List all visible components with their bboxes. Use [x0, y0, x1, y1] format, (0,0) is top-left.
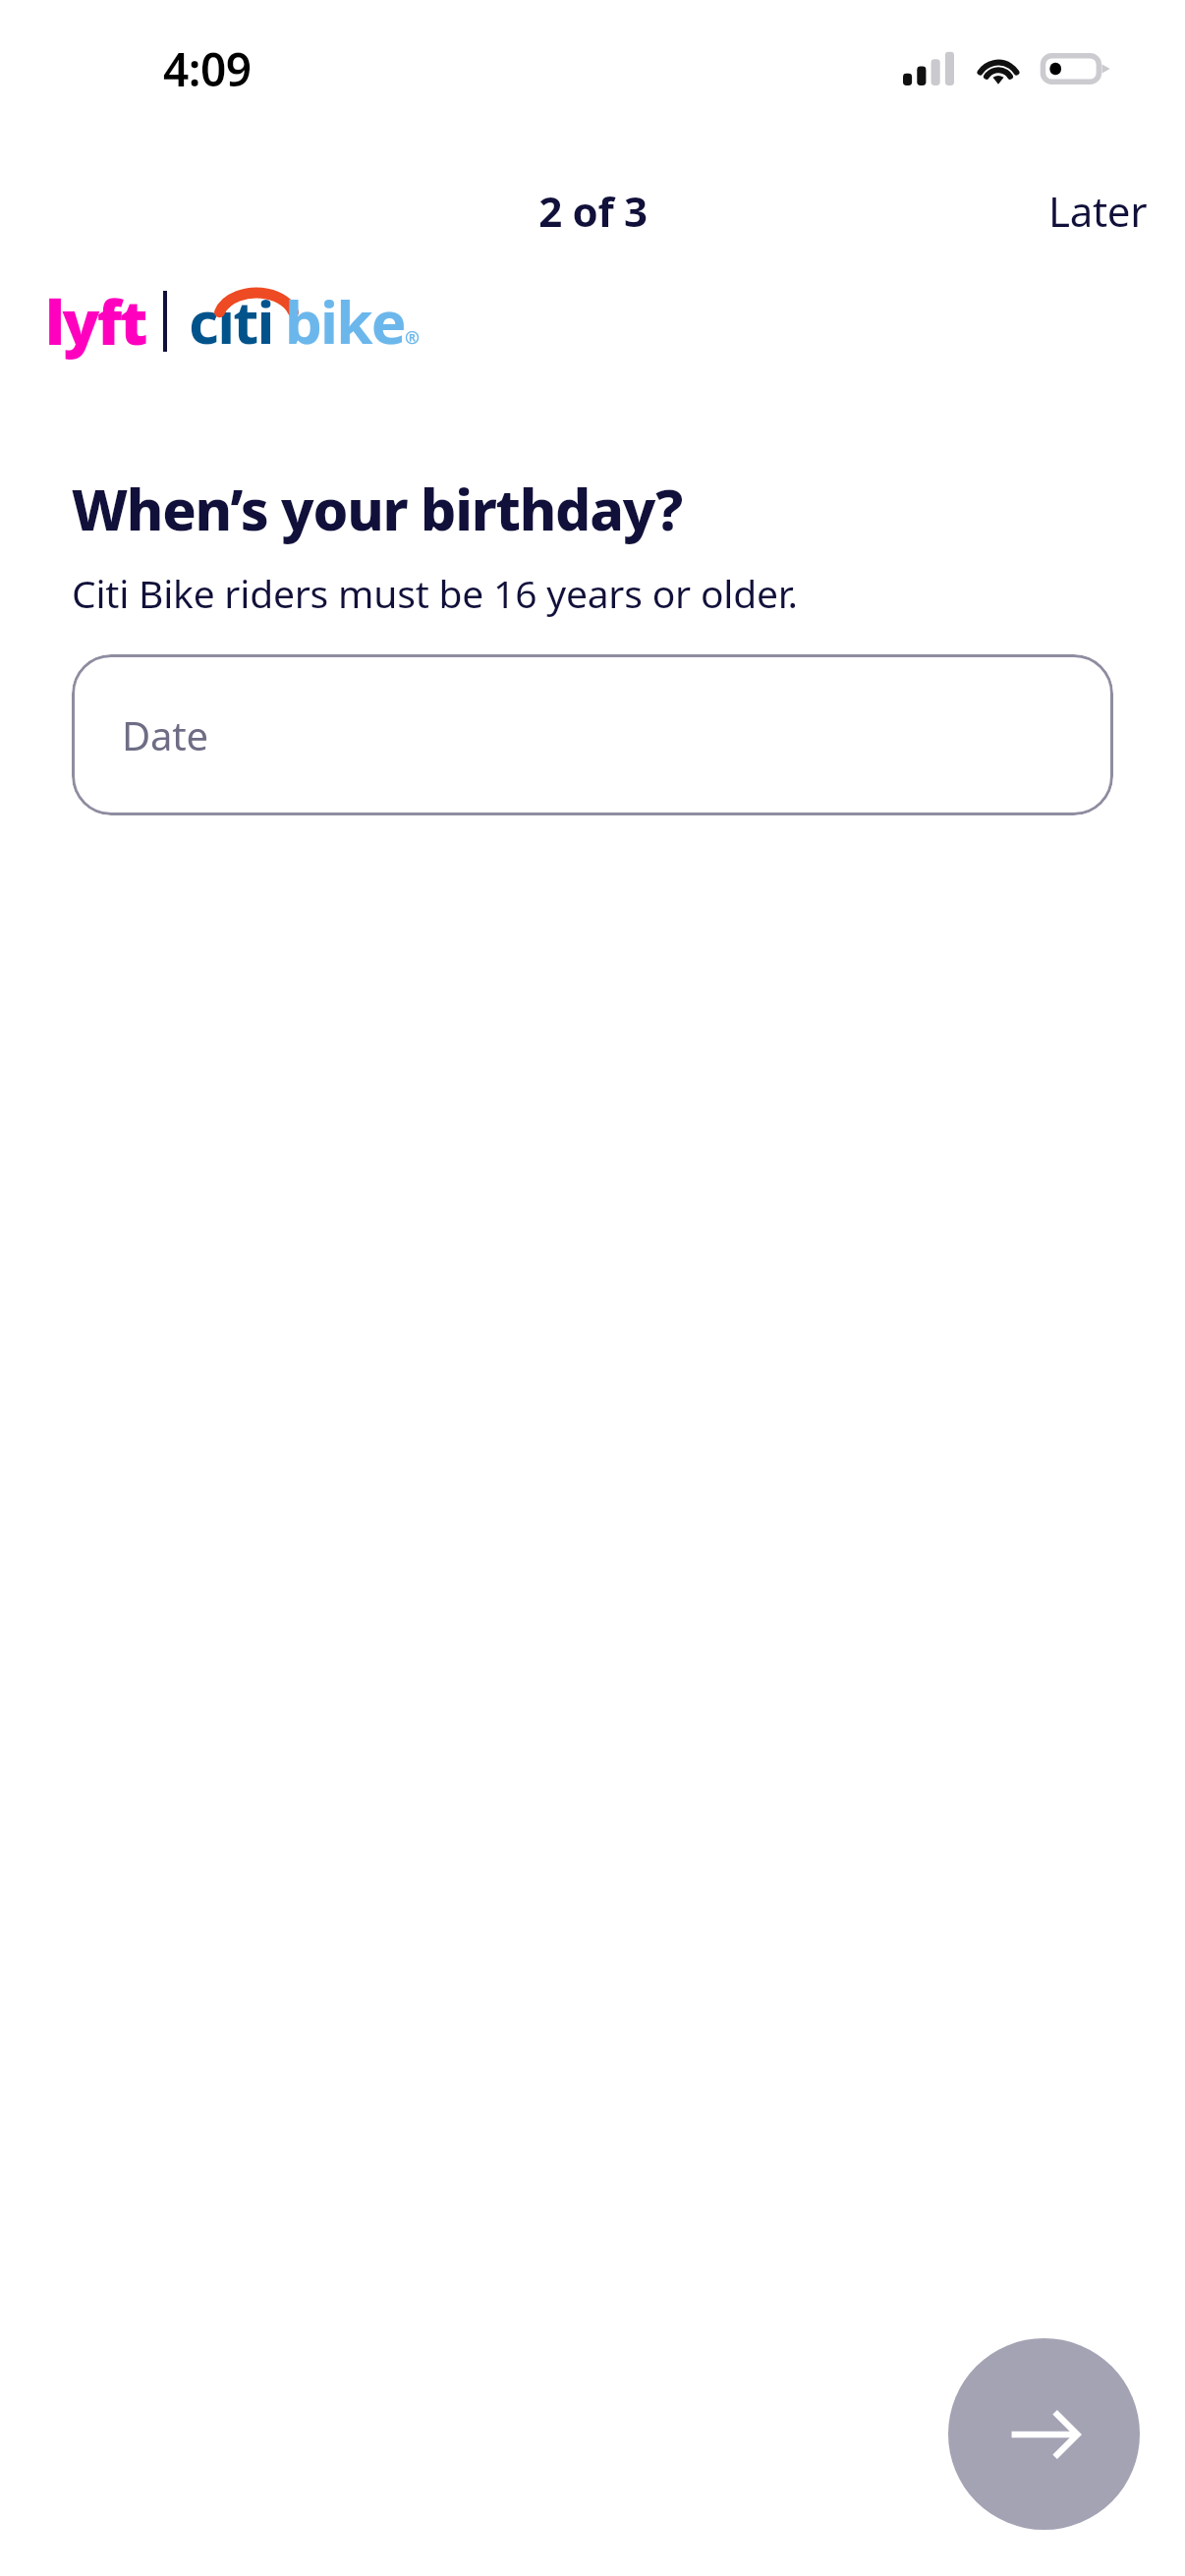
staticText: citi [189, 281, 273, 362]
button[interactable]: Later [1011, 173, 1185, 249]
staticText: 4:09 [163, 38, 252, 100]
staticText: When’s your birthday? [72, 471, 683, 547]
staticText: Later [1048, 183, 1148, 239]
staticText: ® [405, 325, 420, 350]
staticText: bike [285, 281, 405, 362]
staticText: lyft [45, 280, 145, 363]
staticText: Citi Bike riders must be 16 years or old… [72, 567, 798, 619]
staticText: 2 of 3 [538, 183, 648, 239]
staticText: Date [122, 708, 208, 761]
button[interactable]: Next [948, 2338, 1140, 2530]
button[interactable]: Date [72, 654, 1113, 815]
